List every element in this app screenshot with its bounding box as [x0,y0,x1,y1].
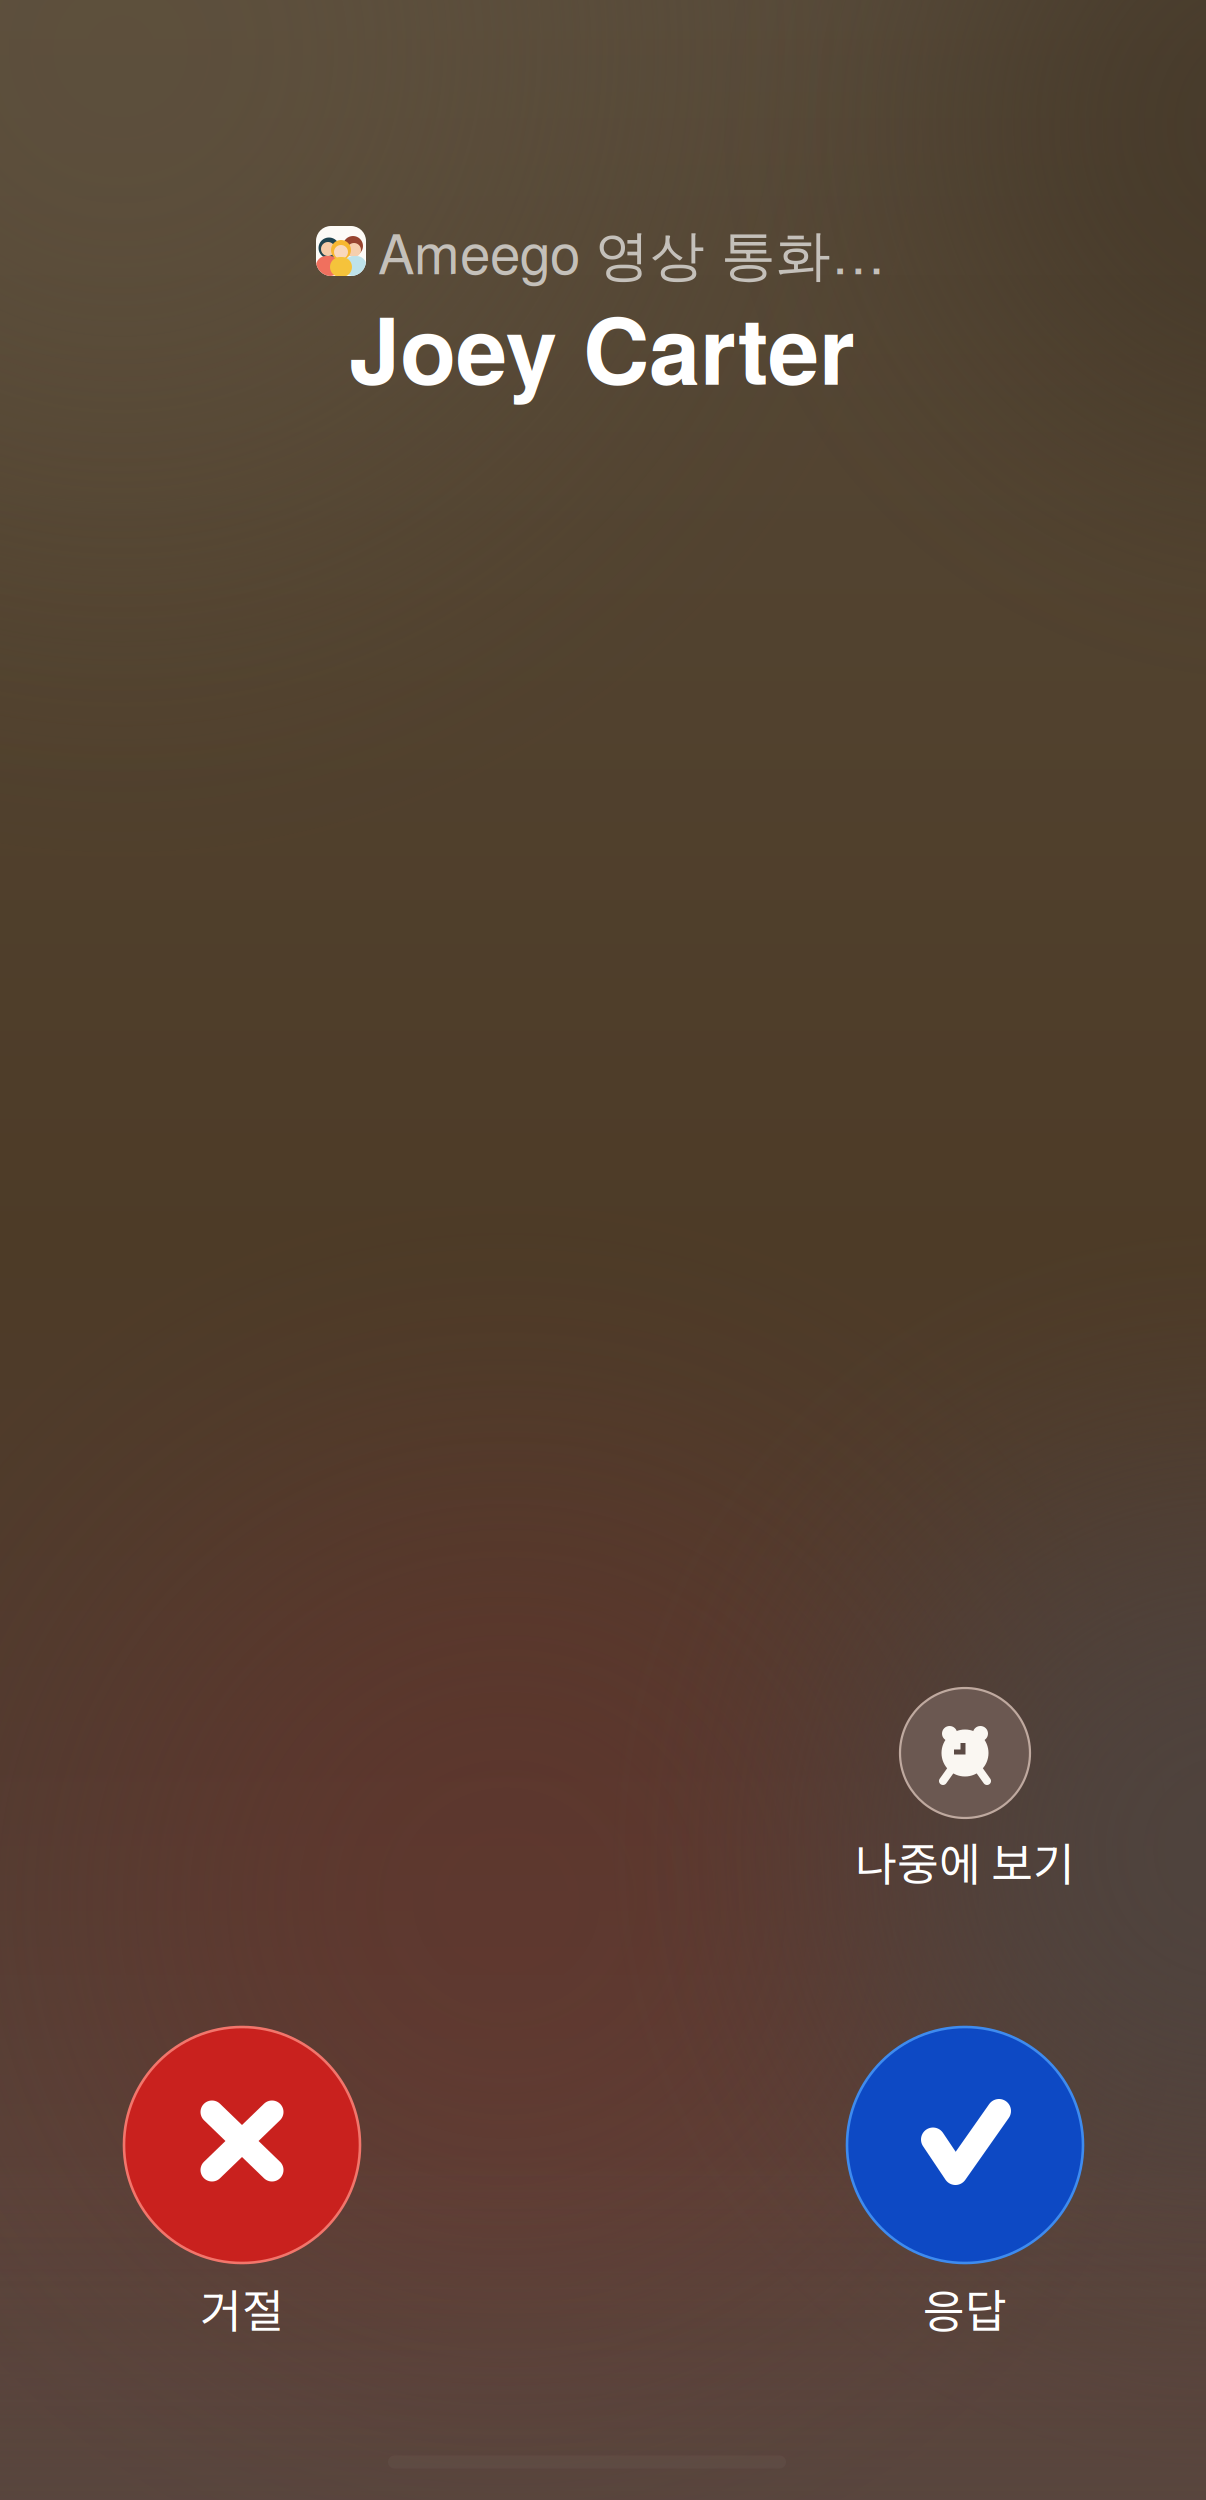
button[interactable]: 응답 [847,2027,1083,2353]
staticText: Joey Carter [349,281,855,413]
staticText: 응답 [923,2275,1007,2341]
button[interactable]: 거절 [124,2027,360,2353]
staticText: Ameego 영상 통화… [378,211,886,290]
staticText: 거절 [200,2275,284,2341]
button[interactable]: 나중에 보기 [855,1688,1075,1904]
staticText: 나중에 보기 [855,1828,1075,1894]
